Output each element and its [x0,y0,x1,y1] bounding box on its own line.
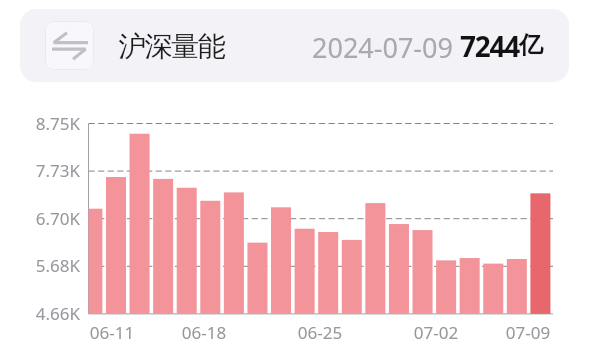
button[interactable]: Swap [20,9,569,82]
staticText: 7244 [460,27,519,65]
staticText: 7.73K [34,159,80,182]
staticText: 2024-07-09 [312,29,453,66]
staticText: 沪深量能 [119,29,225,64]
staticText: 6.70K [34,207,80,230]
button[interactable]: Swap [45,21,94,70]
staticText: 8.75K [34,112,80,135]
staticText: 07-09 [498,321,558,344]
staticText: 07-02 [406,321,466,344]
staticText: 06-25 [290,321,350,344]
staticText: 亿 [519,30,543,60]
staticText: 5.68K [34,254,80,277]
staticText: 06-18 [174,321,234,344]
staticText: 06-11 [82,321,142,344]
staticText: 4.66K [34,302,80,325]
